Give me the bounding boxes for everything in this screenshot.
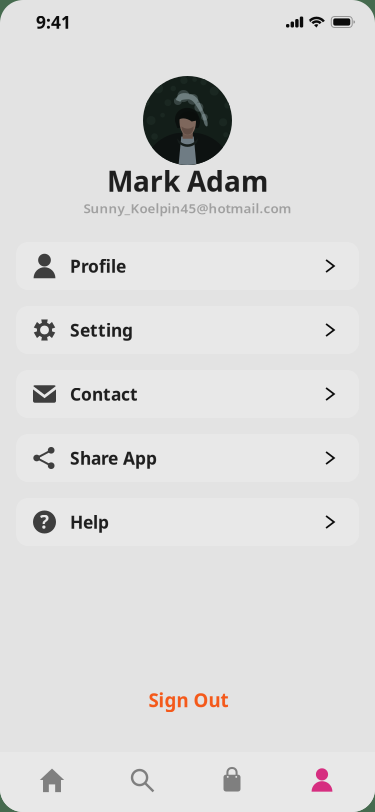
button[interactable]: ? (16, 498, 359, 546)
button[interactable]: Contact (16, 370, 359, 418)
button[interactable]: Share App (16, 434, 359, 482)
staticText: Share App (70, 446, 157, 469)
staticText: Profile (70, 254, 126, 277)
button[interactable]: Setting (16, 306, 359, 354)
staticText: Setting (70, 318, 133, 341)
button[interactable]: Profile (277, 752, 367, 812)
button[interactable]: Sign Out (113, 678, 263, 722)
button[interactable]: Profile (16, 242, 359, 290)
staticText: Mark Adam (107, 162, 268, 200)
button[interactable]: Shop (187, 752, 277, 812)
staticText: Contact (70, 382, 138, 405)
button[interactable]: Home (7, 752, 97, 812)
staticText: 9:41 (36, 10, 71, 33)
button[interactable]: Search (97, 752, 187, 812)
staticText: Sunny_Koelpin45@hotmail.com (83, 199, 291, 217)
staticText: Sign Out (148, 688, 228, 712)
staticText: ? (40, 509, 49, 534)
staticText: Help (70, 510, 109, 533)
